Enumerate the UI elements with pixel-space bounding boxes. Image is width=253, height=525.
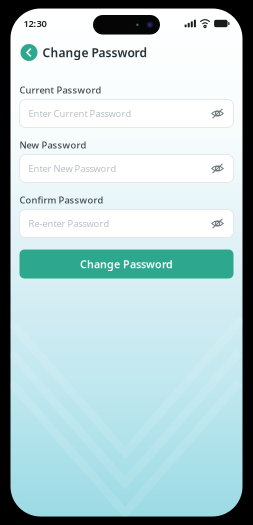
staticText: Change Password [80,257,173,271]
button[interactable]: Back [20,44,37,61]
button[interactable]: Show Confirm Password [207,209,227,237]
button[interactable]: Change Password [19,249,233,278]
staticText: Current Password [19,84,101,96]
staticText: Confirm Password [19,194,103,206]
staticText: 12:30 [23,17,46,30]
staticText: Enter New Password [28,162,116,175]
button[interactable]: Show New Password [207,154,227,182]
staticText: Enter Current Password [28,107,131,120]
staticText: Re-enter Password [28,217,109,230]
button[interactable]: Show Current Password [207,99,227,127]
staticText: Change Password [42,44,147,60]
staticText: New Password [19,139,86,151]
